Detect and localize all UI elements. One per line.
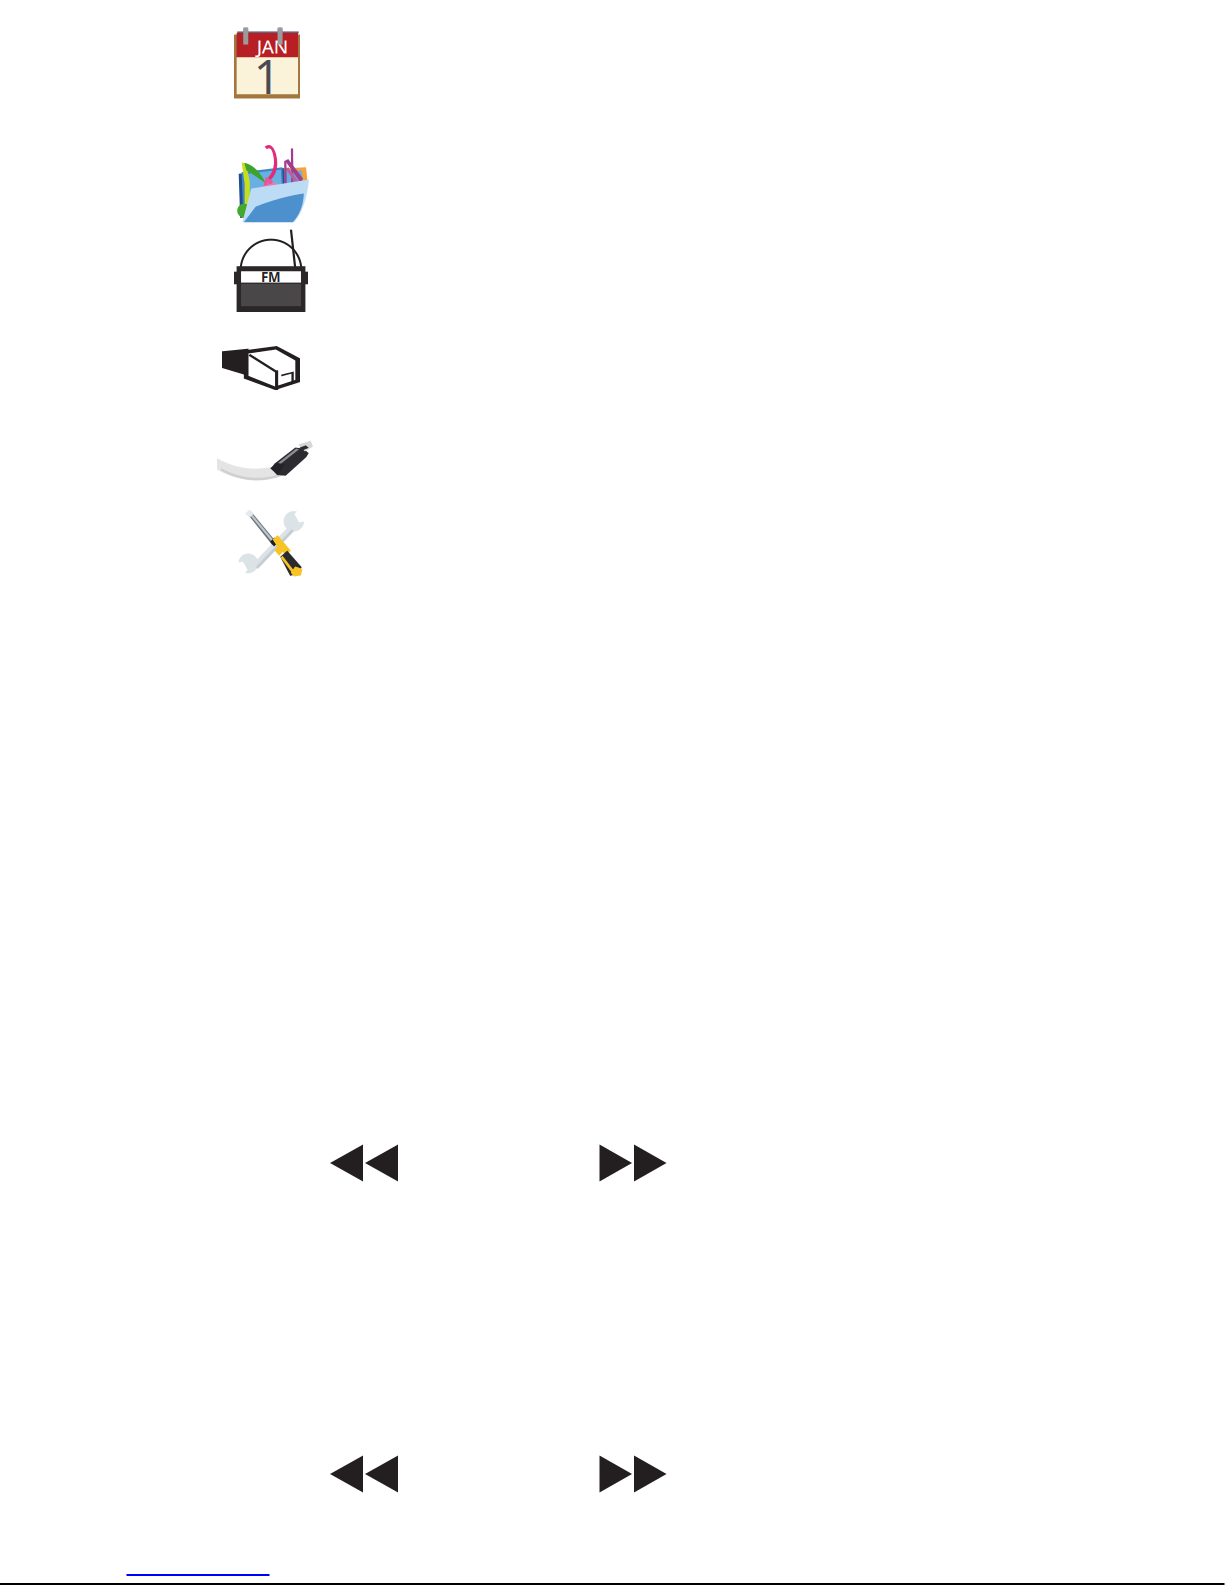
- button[interactable]: Rewind: [330, 1144, 398, 1181]
- button[interactable]: Fast forward: [599, 1144, 666, 1181]
- button[interactable]: Rewind: [330, 1455, 398, 1492]
- staticText: 1: [254, 45, 281, 107]
- staticText: JAN: [257, 34, 288, 59]
- button[interactable]: Connector: [222, 346, 300, 390]
- button[interactable]: Tools: [238, 507, 304, 576]
- button[interactable]: Cable: [217, 440, 313, 478]
- button[interactable]: Link: [126, 1574, 269, 1576]
- button[interactable]: Calendar: [234, 27, 300, 98]
- staticText: FM: [261, 268, 281, 286]
- button[interactable]: FM radio: [234, 228, 308, 312]
- button[interactable]: Fast forward: [599, 1455, 666, 1492]
- button[interactable]: Music folder: [235, 141, 309, 223]
